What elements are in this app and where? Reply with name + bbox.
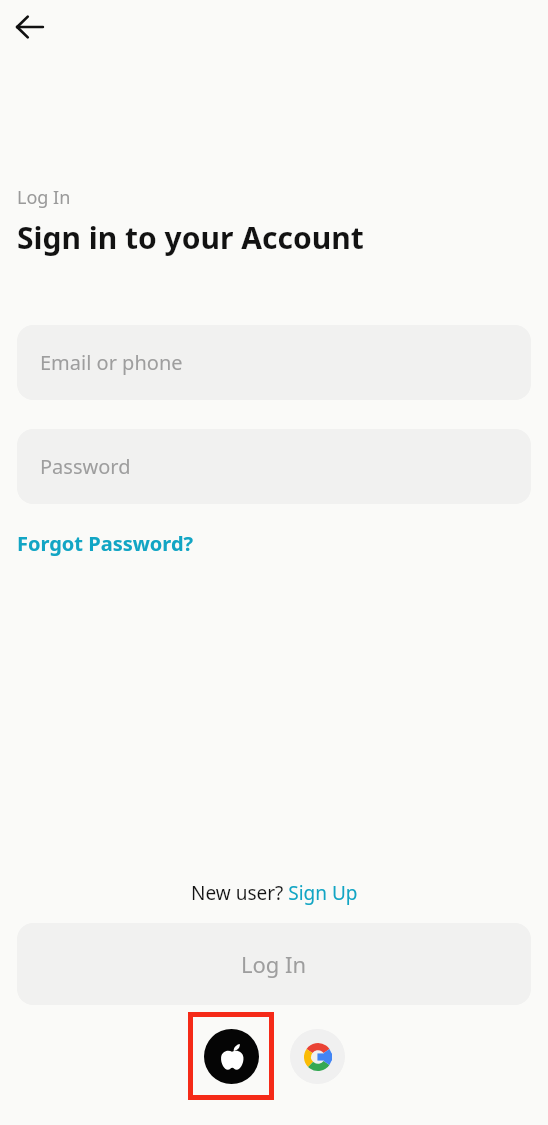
staticText: Log In <box>17 185 71 210</box>
staticText: Email or phone <box>40 349 183 376</box>
button[interactable]: Password <box>17 429 531 504</box>
button[interactable]: Email or phone <box>17 325 531 400</box>
button[interactable]: Sign in with Apple <box>189 1013 273 1099</box>
button[interactable]: New user? Sign Up <box>187 877 362 909</box>
staticText: New user? Sign Up <box>191 880 358 906</box>
staticText: Sign in to your Account <box>17 217 364 258</box>
button[interactable]: Forgot Password? <box>17 524 194 563</box>
staticText: Forgot Password? <box>17 530 194 557</box>
button[interactable]: Back <box>6 3 54 51</box>
button[interactable]: Sign in with Google <box>275 1014 359 1098</box>
staticText: Password <box>40 453 131 480</box>
button[interactable]: Log In <box>17 923 531 1005</box>
staticText: Log In <box>241 949 307 979</box>
